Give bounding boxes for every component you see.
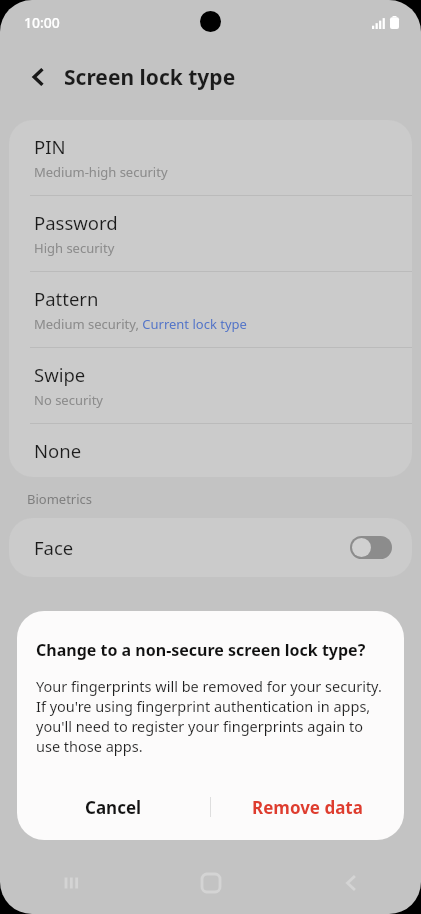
button[interactable]: Face xyxy=(9,518,412,577)
staticText: 10:00 xyxy=(24,13,60,32)
button[interactable]: Remove data xyxy=(211,780,404,834)
staticText: Password xyxy=(34,210,118,235)
staticText: Face xyxy=(34,535,74,560)
staticText: Change to a non-secure screen lock type? xyxy=(36,639,366,661)
button[interactable]: PIN xyxy=(9,120,412,195)
staticText: Pattern xyxy=(34,286,99,311)
button[interactable]: Swipe xyxy=(9,347,412,423)
button[interactable]: None xyxy=(9,423,412,477)
staticText: Medium-high security xyxy=(34,163,168,181)
staticText: PIN xyxy=(34,134,66,159)
button[interactable]: Back xyxy=(281,852,421,914)
button[interactable]: Cancel xyxy=(17,780,210,834)
staticText: No security xyxy=(34,391,104,409)
button[interactable]: Password xyxy=(9,195,412,271)
staticText: Cancel xyxy=(85,796,142,819)
button[interactable]: Recents xyxy=(0,852,141,914)
staticText: High security xyxy=(34,239,115,257)
button[interactable]: Face toggle xyxy=(350,536,392,559)
staticText: Medium security, Current lock type xyxy=(34,315,247,333)
staticText: Biometrics xyxy=(27,490,93,508)
staticText: Swipe xyxy=(34,362,86,387)
staticText: Your fingerprints will be removed for yo… xyxy=(36,676,385,756)
staticText: Remove data xyxy=(252,796,363,819)
staticText: None xyxy=(34,438,82,463)
button[interactable]: Back xyxy=(21,60,55,94)
button[interactable]: Pattern xyxy=(9,271,412,347)
staticText: Screen lock type xyxy=(64,63,236,92)
